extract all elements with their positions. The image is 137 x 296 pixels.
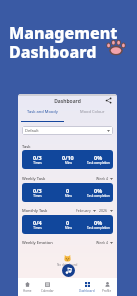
- staticText: Times: [33, 194, 42, 198]
- staticText: 0/3: [33, 154, 42, 161]
- staticText: Weekly Task: [22, 176, 46, 181]
- staticText: 0/3: [33, 187, 42, 194]
- button[interactable]: Week 4: [96, 176, 113, 181]
- staticText: Mood Colour: [80, 109, 105, 114]
- staticText: Default: [25, 128, 39, 133]
- staticText: Dashboard: [79, 289, 95, 293]
- button[interactable]: Dashboard: [77, 278, 97, 296]
- staticText: Profile: [102, 289, 112, 293]
- staticText: Week 4: [96, 240, 108, 245]
- staticText: 0%: [94, 219, 103, 226]
- staticText: Mins: [65, 161, 72, 165]
- staticText: Task and Moody: [27, 109, 58, 114]
- staticText: Task completion: [87, 161, 110, 165]
- staticText: Dashboard: [9, 41, 97, 63]
- staticText: Mins: [65, 226, 72, 230]
- staticText: Weekly Emotion: [22, 240, 53, 245]
- staticText: 0%: [94, 154, 103, 161]
- staticText: Management: [9, 22, 118, 44]
- staticText: 0/10: [62, 154, 74, 161]
- staticText: February: [76, 208, 91, 213]
- staticText: 0: [66, 187, 70, 194]
- staticText: Task completion: [87, 194, 110, 198]
- staticText: Dashboard: [18, 98, 117, 105]
- staticText: Home: [23, 289, 32, 293]
- staticText: 0/4: [33, 219, 42, 226]
- button[interactable]: Mood Colour: [67, 106, 117, 122]
- button[interactable]: Default: [22, 126, 113, 135]
- staticText: Week 4: [96, 176, 108, 181]
- staticText: Monthly Task: [22, 208, 48, 213]
- staticText: Mins: [65, 194, 72, 198]
- button[interactable]: Profile: [97, 278, 117, 296]
- staticText: Times: [33, 161, 42, 165]
- button[interactable]: 2026: [99, 208, 113, 213]
- button[interactable]: Add music: [62, 264, 75, 277]
- staticText: 2026: [99, 208, 108, 213]
- button[interactable]: Home: [18, 278, 37, 296]
- staticText: Task completion: [87, 226, 110, 230]
- staticText: 0%: [94, 187, 103, 194]
- button[interactable]: Task and Moody: [18, 106, 67, 122]
- staticText: Task: [22, 144, 31, 149]
- button[interactable]: Calendar: [37, 278, 57, 296]
- staticText: No data found: [57, 263, 78, 267]
- staticText: Calendar: [41, 289, 54, 293]
- button[interactable]: Week 4: [96, 240, 113, 245]
- button[interactable]: Share: [104, 96, 113, 105]
- staticText: Times: [33, 226, 42, 230]
- staticText: 0: [66, 219, 70, 226]
- button[interactable]: February: [76, 208, 96, 213]
